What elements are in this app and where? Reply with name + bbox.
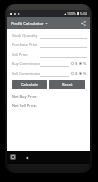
button[interactable]: Back <box>21 152 33 164</box>
staticText: Sell Commission <box>12 71 40 76</box>
button[interactable]: $ <box>71 71 78 76</box>
button[interactable]: Home <box>7 151 19 163</box>
button[interactable]: Share <box>77 17 89 29</box>
staticText: Sell Price <box>12 52 28 57</box>
staticText: Buy Commission <box>12 61 40 66</box>
button[interactable]: $ <box>71 61 78 66</box>
button[interactable]: Calculate <box>12 80 47 89</box>
staticText: 5:34 <box>80 11 87 16</box>
button[interactable]: % <box>79 61 87 66</box>
staticText: Calculate <box>21 82 39 87</box>
staticText: Stock Quantity <box>12 33 38 38</box>
staticText: $ <box>75 71 78 76</box>
button[interactable]: % <box>79 71 87 76</box>
staticText: % <box>83 61 87 66</box>
staticText: Net Buy Price: <box>12 94 38 99</box>
button[interactable]: Reset <box>49 80 85 89</box>
staticText: 100% <box>67 11 76 16</box>
staticText: $ <box>75 61 78 66</box>
staticText: Net Sell Price: <box>12 103 37 108</box>
staticText: Profit Calculator <box>11 20 44 26</box>
staticText: Purchase Price <box>12 42 38 47</box>
staticText: Reset <box>62 82 73 87</box>
staticText: % <box>83 71 87 76</box>
button[interactable]: Recents <box>7 151 19 163</box>
